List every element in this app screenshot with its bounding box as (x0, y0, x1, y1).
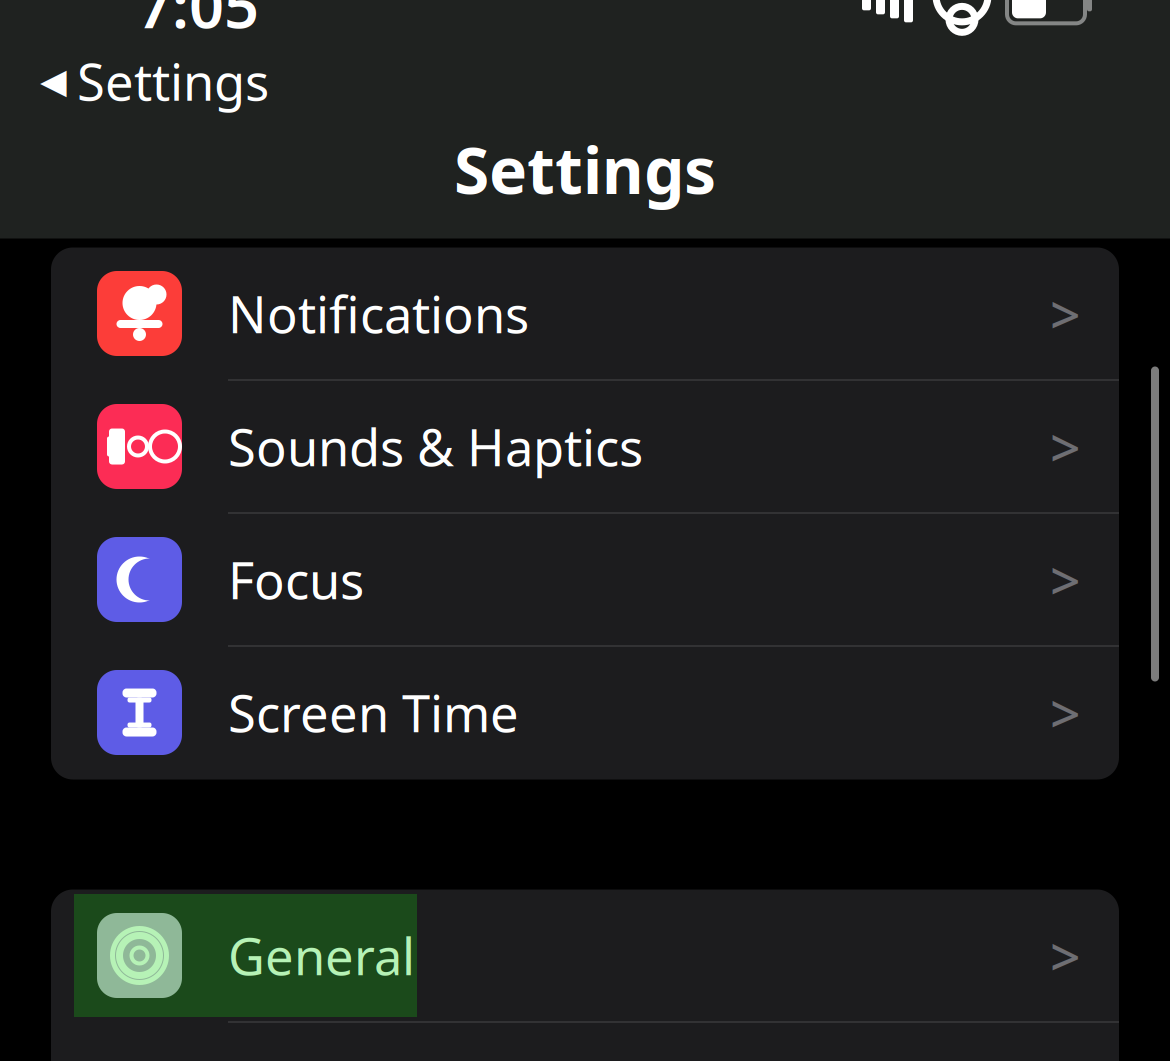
button[interactable]: General (51, 889, 1119, 1022)
staticText: Notifications (228, 280, 529, 347)
staticText: Focus (228, 546, 364, 613)
staticText: Screen Time (228, 679, 519, 746)
button[interactable]: Notifications (51, 247, 1119, 380)
button[interactable]: ◀ (0, 43, 309, 119)
button[interactable]: Screen Time (51, 646, 1119, 779)
staticText: Sounds & Haptics (228, 413, 643, 480)
staticText: > (1050, 920, 1081, 991)
staticText: General (228, 922, 415, 989)
staticText: ◀ (40, 61, 67, 101)
staticText: 7:05 (137, 0, 259, 45)
staticText: > (1050, 278, 1081, 349)
staticText: > (1050, 544, 1081, 615)
staticText: Settings (77, 47, 269, 115)
staticText: > (1050, 677, 1081, 748)
staticText: Settings (454, 127, 716, 212)
button[interactable]: Focus (51, 513, 1119, 646)
staticText: > (1050, 411, 1081, 482)
button[interactable]: Sounds & Haptics (51, 380, 1119, 513)
